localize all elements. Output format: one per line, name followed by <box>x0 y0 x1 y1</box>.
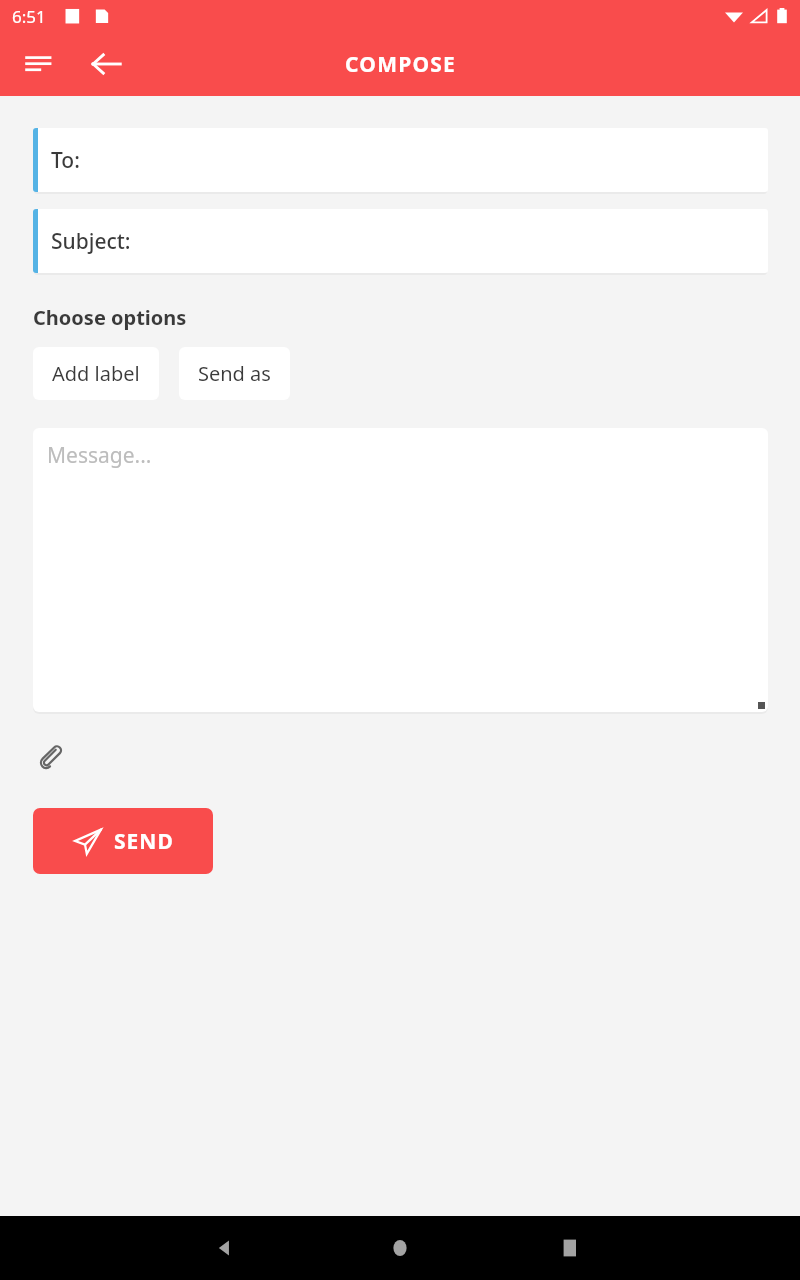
staticText: 6:51 <box>12 5 46 28</box>
staticText: Message... <box>47 441 152 470</box>
button[interactable]: SEND <box>33 808 213 874</box>
button[interactable]: To: <box>33 128 768 192</box>
button[interactable]: Home <box>370 1218 430 1278</box>
staticText: Add label <box>52 360 140 387</box>
staticText: COMPOSE <box>345 50 456 79</box>
staticText: Send as <box>198 360 271 387</box>
button[interactable]: Recent apps <box>540 1218 600 1278</box>
button[interactable]: Back <box>78 36 134 92</box>
staticText: SEND <box>114 827 174 856</box>
button[interactable]: Back <box>195 1218 255 1278</box>
button[interactable]: Message... <box>33 428 768 712</box>
staticText: Subject: <box>51 227 131 256</box>
button[interactable]: Menu <box>12 38 64 90</box>
staticText: Choose options <box>33 304 187 331</box>
staticText: To: <box>51 146 80 175</box>
button[interactable]: Subject: <box>33 209 768 273</box>
button[interactable]: Add label <box>33 347 159 400</box>
button[interactable]: Attach file <box>30 736 70 776</box>
button[interactable]: Send as <box>179 347 290 400</box>
